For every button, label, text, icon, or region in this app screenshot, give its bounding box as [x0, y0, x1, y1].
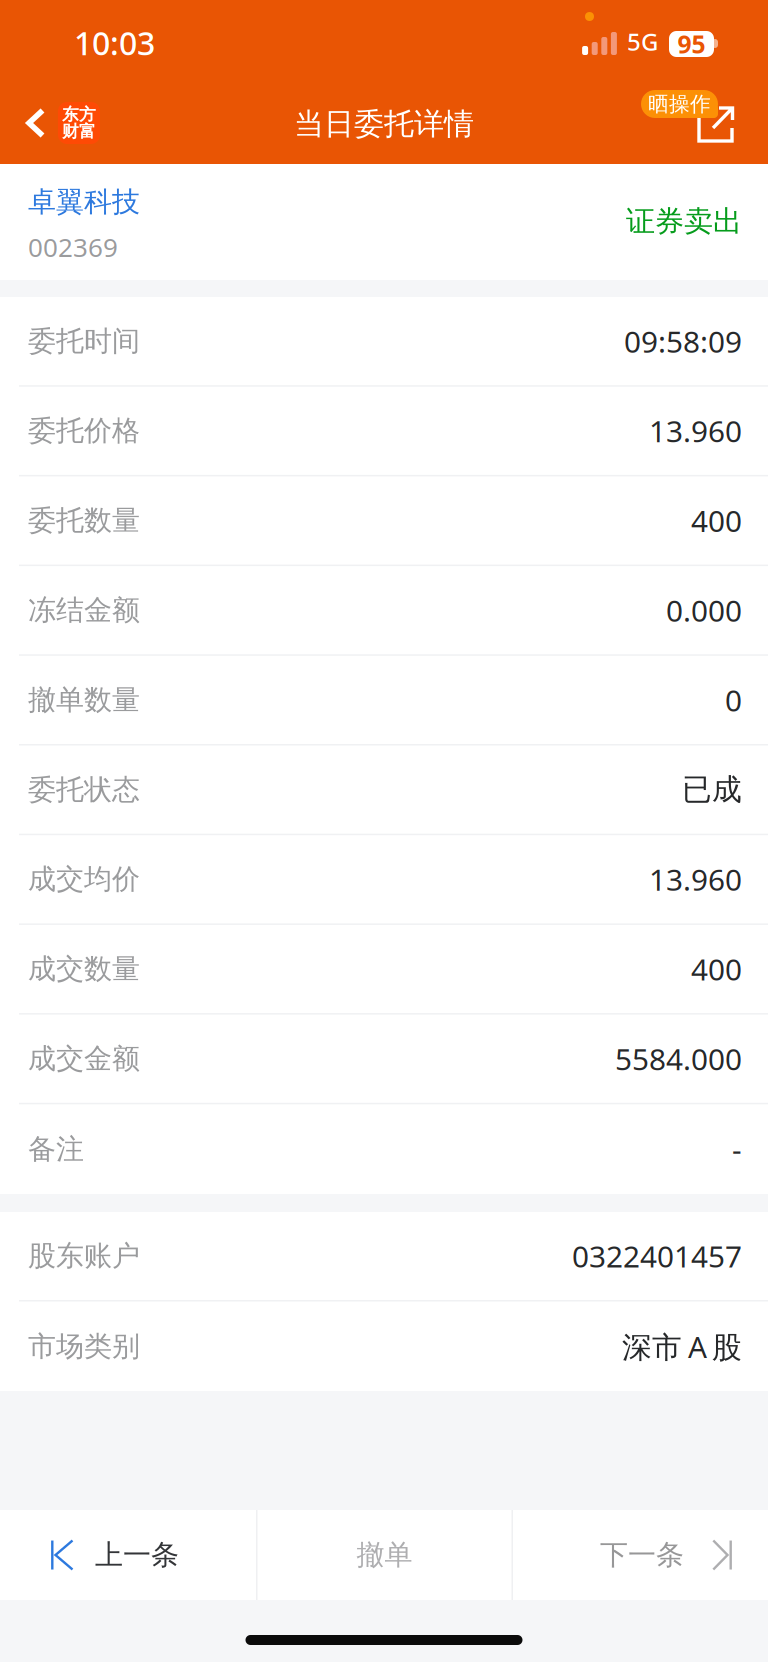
staticText: 09:58:09	[624, 321, 742, 361]
staticText: 委托时间	[28, 323, 140, 359]
staticText: 400	[691, 500, 742, 541]
staticText: 0322401457	[572, 1236, 742, 1276]
staticText: 财富	[62, 121, 96, 142]
button[interactable]: 撤单	[257, 1510, 511, 1600]
staticText: 股东账户	[28, 1238, 140, 1274]
staticText: 东方	[62, 104, 96, 125]
staticText: 成交数量	[28, 951, 140, 987]
staticText: 卓翼科技	[28, 184, 140, 220]
staticText: 已成	[682, 771, 742, 808]
staticText: 400	[691, 949, 742, 989]
staticText: 市场类别	[28, 1329, 140, 1364]
button[interactable]: Share	[0, 82, 753, 164]
staticText: 成交金额	[28, 1041, 140, 1076]
staticText: -	[732, 1129, 742, 1169]
staticText: 5584.000	[615, 1038, 742, 1079]
staticText: 5G	[627, 25, 658, 58]
staticText: 002369	[28, 229, 118, 265]
staticText: 备注	[28, 1131, 84, 1167]
staticText: 委托状态	[28, 772, 140, 807]
button[interactable]: 上一条	[0, 1510, 256, 1600]
staticText: 10:03	[74, 21, 155, 65]
staticText: 下一条	[600, 1537, 684, 1573]
staticText: 撤单数量	[28, 682, 140, 718]
staticText: 委托价格	[28, 413, 140, 448]
button[interactable]: 东方	[0, 82, 118, 164]
staticText: 晒操作	[648, 91, 711, 117]
staticText: 13.960	[649, 859, 742, 900]
staticText: 深市 A 股	[622, 1326, 742, 1367]
staticText: 13.960	[649, 411, 742, 451]
staticText: 0	[725, 680, 742, 720]
staticText: 95	[677, 27, 705, 61]
staticText: 委托数量	[28, 503, 140, 538]
staticText: 冻结金额	[28, 593, 140, 628]
staticText: 撤单	[356, 1537, 412, 1573]
staticText: 上一条	[95, 1537, 179, 1573]
staticText: 成交均价	[28, 862, 140, 897]
staticText: 当日委托详情	[294, 105, 474, 143]
staticText: 证券卖出	[626, 203, 742, 240]
staticText: 0.000	[666, 590, 742, 630]
button[interactable]: 下一条	[513, 1510, 768, 1600]
